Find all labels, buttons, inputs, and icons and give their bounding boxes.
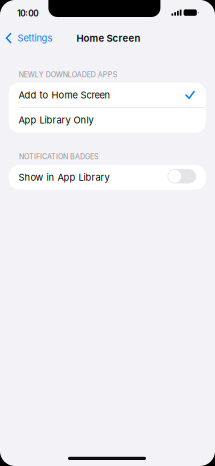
- button[interactable]: Settings: [0, 28, 58, 48]
- button[interactable]: App Library Only: [9, 108, 206, 133]
- button[interactable]: Show in App Library: [167, 169, 196, 183]
- staticText: Add to Home Screen: [18, 89, 110, 101]
- staticText: Settings: [18, 32, 53, 44]
- button[interactable]: Add to Home Screen: [9, 82, 206, 108]
- staticText: NOTIFICATION BADGES: [19, 152, 99, 161]
- staticText: Show in App Library: [18, 172, 109, 183]
- staticText: NEWLY DOWNLOADED APPS: [19, 70, 118, 79]
- staticText: App Library Only: [18, 115, 93, 126]
- staticText: Home Screen: [76, 32, 140, 44]
- staticText: 10:00: [17, 8, 38, 18]
